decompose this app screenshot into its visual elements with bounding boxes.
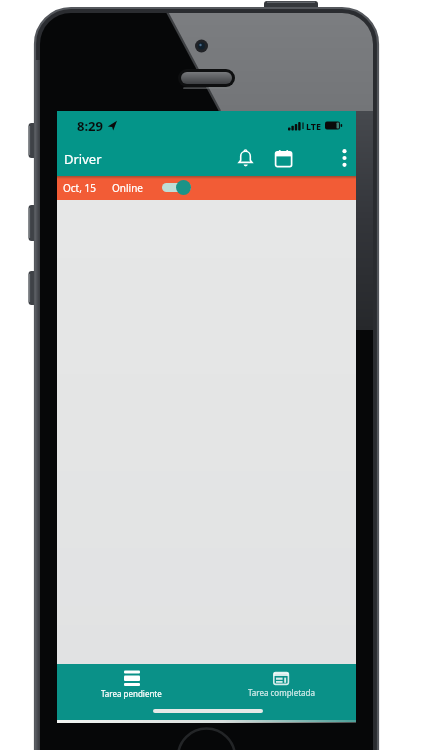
staticText: Online [112, 181, 143, 195]
button[interactable] [230, 143, 260, 173]
button[interactable]: Tarea completada [206, 664, 356, 722]
button[interactable] [162, 179, 191, 195]
button[interactable] [334, 143, 354, 173]
staticText: Tarea pendiente [101, 688, 162, 699]
staticText: Oct, 15 [63, 181, 96, 195]
staticText: Tarea completada [248, 687, 315, 698]
button[interactable] [268, 143, 298, 173]
staticText: LTE [306, 120, 322, 132]
staticText: Driver [64, 150, 102, 168]
button[interactable]: Tarea pendiente [57, 664, 206, 722]
staticText: 8:29 [77, 117, 103, 135]
